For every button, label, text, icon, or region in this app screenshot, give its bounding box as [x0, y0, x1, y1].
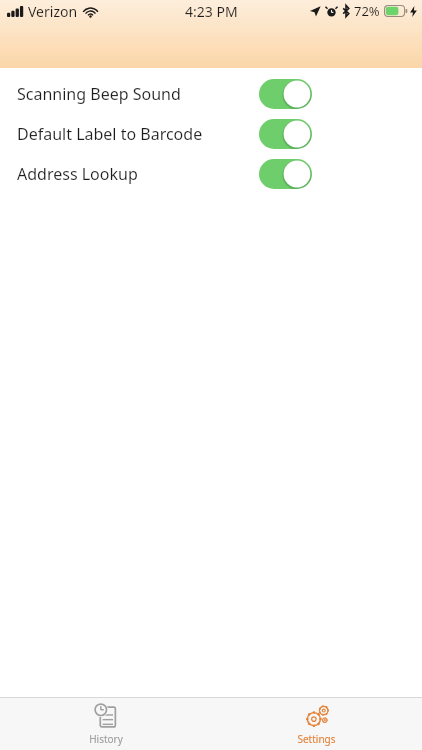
button[interactable]: Toggle on	[259, 79, 312, 109]
other: History	[93, 703, 119, 729]
other: Settings	[304, 703, 330, 729]
button[interactable]: Scanning Beep Sound	[0, 74, 422, 114]
staticText: 72%	[354, 2, 380, 20]
staticText: Settings	[297, 732, 336, 746]
staticText: Default Label to Barcode	[17, 123, 203, 145]
button[interactable]: Settings	[211, 698, 422, 746]
staticText: Verizon	[28, 2, 78, 21]
button[interactable]: History	[0, 698, 211, 746]
staticText: 4:23 PM	[185, 2, 238, 21]
button[interactable]: Default Label to Barcode	[0, 114, 422, 154]
button[interactable]: Toggle on	[259, 159, 312, 189]
button[interactable]: Toggle on	[259, 119, 312, 149]
staticText: Address Lookup	[17, 163, 138, 185]
button[interactable]: Address Lookup	[0, 154, 422, 194]
staticText: History	[89, 732, 123, 746]
staticText: Scanning Beep Sound	[17, 83, 181, 105]
